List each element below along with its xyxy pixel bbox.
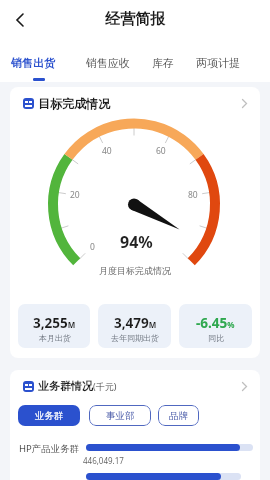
staticText: 本月出货 <box>39 333 71 343</box>
button[interactable]: 事业部 <box>89 405 151 426</box>
staticText: 20 <box>70 189 80 201</box>
button[interactable]: 销售出货 <box>11 56 55 70</box>
button[interactable]: 业务群情况 <box>23 379 248 393</box>
button[interactable]: -6.45% <box>179 304 252 348</box>
staticText: 60 <box>156 145 166 157</box>
staticText: 0 <box>90 241 95 253</box>
staticText: 经营简报 <box>105 10 165 29</box>
staticText: 80 <box>188 189 198 201</box>
button[interactable]: 目标完成情况 <box>23 96 248 111</box>
button[interactable]: 两项计提 <box>196 56 240 70</box>
button[interactable]: 品牌 <box>158 405 199 426</box>
staticText: 同比 <box>208 333 224 343</box>
staticText: 94% <box>120 231 153 249</box>
staticText: 3,479M <box>114 314 157 332</box>
button[interactable]: 3,255M <box>18 304 90 348</box>
staticText: 446,049.17 <box>83 455 124 466</box>
staticText: HP产品业务群 <box>19 442 80 455</box>
staticText: 品牌 <box>169 410 188 422</box>
staticText: 去年同期出货 <box>111 333 159 343</box>
button[interactable]: 3,479M <box>98 304 171 348</box>
staticText: -6.45% <box>196 314 235 332</box>
staticText: (千元) <box>93 380 117 392</box>
button[interactable]: 业务群 <box>18 405 80 426</box>
staticText: 40 <box>102 145 112 157</box>
staticText: 事业部 <box>106 410 135 422</box>
staticText: 目标完成情况 <box>38 96 110 111</box>
button[interactable] <box>8 8 32 32</box>
button[interactable]: 销售应收 <box>86 56 130 70</box>
staticText: 业务群 <box>35 410 64 422</box>
staticText: 3,255M <box>33 314 76 332</box>
staticText: 月度目标完成情况 <box>99 265 171 276</box>
staticText: 业务群情况 <box>38 379 93 393</box>
button[interactable]: 库存 <box>152 56 174 70</box>
